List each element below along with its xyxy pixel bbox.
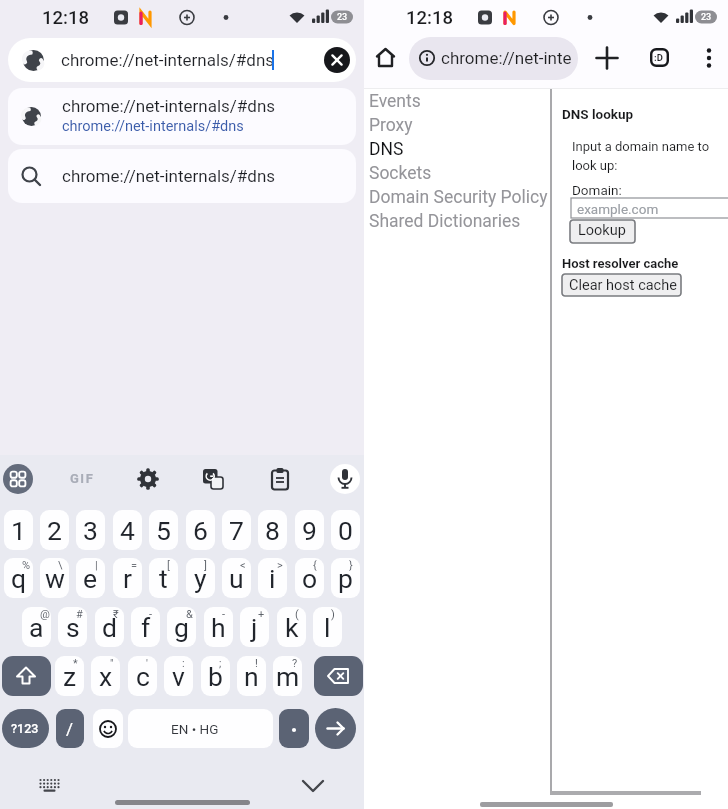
staticText: Clear host cache xyxy=(569,277,677,294)
button[interactable]: m xyxy=(273,656,302,696)
button[interactable]: 7 xyxy=(222,510,251,550)
staticText: : xyxy=(182,657,185,670)
button[interactable] xyxy=(571,198,728,218)
staticText: { xyxy=(313,559,317,572)
staticText: Domain: xyxy=(572,182,622,198)
staticText: # xyxy=(76,608,83,621)
button[interactable] xyxy=(8,88,356,145)
staticText: Host resolver cache xyxy=(562,256,679,271)
button[interactable] xyxy=(8,38,356,82)
button[interactable]: Events xyxy=(369,91,421,112)
button[interactable]: Proxy xyxy=(369,115,413,136)
button[interactable] xyxy=(570,220,635,243)
button[interactable] xyxy=(562,274,681,296)
button[interactable]: u xyxy=(222,558,251,598)
staticText: b xyxy=(208,661,223,692)
staticText: 23 xyxy=(701,12,712,23)
button[interactable]: o xyxy=(295,558,324,598)
button[interactable] xyxy=(330,464,360,494)
button[interactable] xyxy=(2,656,51,696)
staticText: m xyxy=(276,661,300,692)
staticText: 3 xyxy=(83,515,98,546)
button[interactable]: 6 xyxy=(186,510,215,550)
button[interactable] xyxy=(8,149,356,203)
button[interactable] xyxy=(409,37,578,80)
button[interactable]: j xyxy=(240,607,269,647)
staticText: - xyxy=(149,608,153,621)
staticText: e xyxy=(83,563,98,594)
staticText: chrome://net-internals/#dns xyxy=(61,50,275,70)
button[interactable]: x xyxy=(91,656,120,696)
staticText: ?123 xyxy=(11,721,39,736)
button[interactable] xyxy=(375,47,396,68)
staticText: chrome://net-inte xyxy=(441,48,572,68)
button[interactable]: / xyxy=(56,709,84,748)
button[interactable]: Domain Security Policy xyxy=(369,187,548,208)
button[interactable] xyxy=(596,47,618,69)
staticText: Shared Dictionaries xyxy=(369,211,521,232)
staticText: ( xyxy=(295,608,299,621)
button[interactable]: p xyxy=(331,558,360,598)
button[interactable]: t xyxy=(149,558,178,598)
button[interactable]: Shared Dictionaries xyxy=(369,211,521,232)
staticText: GIF xyxy=(70,471,95,486)
staticText: example.com xyxy=(577,201,659,217)
staticText: 4 xyxy=(120,515,135,546)
button[interactable]: 9 xyxy=(295,510,324,550)
staticText: * xyxy=(73,657,78,670)
button[interactable]: e xyxy=(76,558,105,598)
button[interactable]: y xyxy=(186,558,215,598)
staticText: p xyxy=(338,563,353,594)
button[interactable] xyxy=(279,709,309,748)
staticText: g xyxy=(174,612,189,643)
staticText: % xyxy=(22,559,31,572)
button[interactable]: q xyxy=(4,558,33,598)
button[interactable]: r xyxy=(113,558,142,598)
button[interactable]: s xyxy=(58,607,87,647)
button[interactable]: k xyxy=(277,607,306,647)
button[interactable]: z xyxy=(55,656,84,696)
button[interactable]: f xyxy=(131,607,160,647)
button[interactable]: c xyxy=(128,656,157,696)
button[interactable]: 8 xyxy=(258,510,287,550)
button[interactable] xyxy=(3,464,33,494)
staticText: DNS lookup xyxy=(562,106,634,122)
staticText: + xyxy=(258,608,265,621)
button[interactable]: DNS xyxy=(369,139,404,160)
button[interactable]: i xyxy=(258,558,287,598)
staticText: v xyxy=(172,661,185,692)
button[interactable]: 4 xyxy=(113,510,142,550)
staticText: 7 xyxy=(229,515,244,546)
button[interactable]: w xyxy=(40,558,69,598)
button[interactable]: 2 xyxy=(40,510,69,550)
button[interactable]: 0 xyxy=(331,510,360,550)
button[interactable]: l xyxy=(313,607,342,647)
button[interactable] xyxy=(650,48,669,67)
staticText: ; xyxy=(219,657,222,670)
button[interactable]: 5 xyxy=(149,510,178,550)
staticText: o xyxy=(302,563,318,594)
staticText: & xyxy=(186,608,193,621)
button[interactable]: 3 xyxy=(76,510,105,550)
button[interactable]: d xyxy=(95,607,124,647)
button[interactable] xyxy=(93,709,123,748)
staticText: k xyxy=(285,612,299,643)
staticText: Lookup xyxy=(578,222,626,239)
button[interactable] xyxy=(324,47,350,73)
button[interactable]: 1 xyxy=(4,510,33,550)
button[interactable]: b xyxy=(201,656,230,696)
staticText: Domain Security Policy xyxy=(369,187,548,208)
button[interactable]: Sockets xyxy=(369,163,432,184)
button[interactable]: n xyxy=(237,656,266,696)
staticText: chrome://net-internals/#dns xyxy=(62,166,276,186)
button[interactable]: v xyxy=(164,656,193,696)
staticText: chrome://net-internals/#dns xyxy=(62,118,244,135)
button[interactable] xyxy=(2,709,49,748)
button[interactable]: a xyxy=(22,607,51,647)
button[interactable] xyxy=(128,709,273,748)
button[interactable] xyxy=(315,708,356,749)
button[interactable] xyxy=(314,656,363,696)
button[interactable]: h xyxy=(204,607,233,647)
staticText: j xyxy=(251,612,258,643)
button[interactable]: g xyxy=(167,607,196,647)
